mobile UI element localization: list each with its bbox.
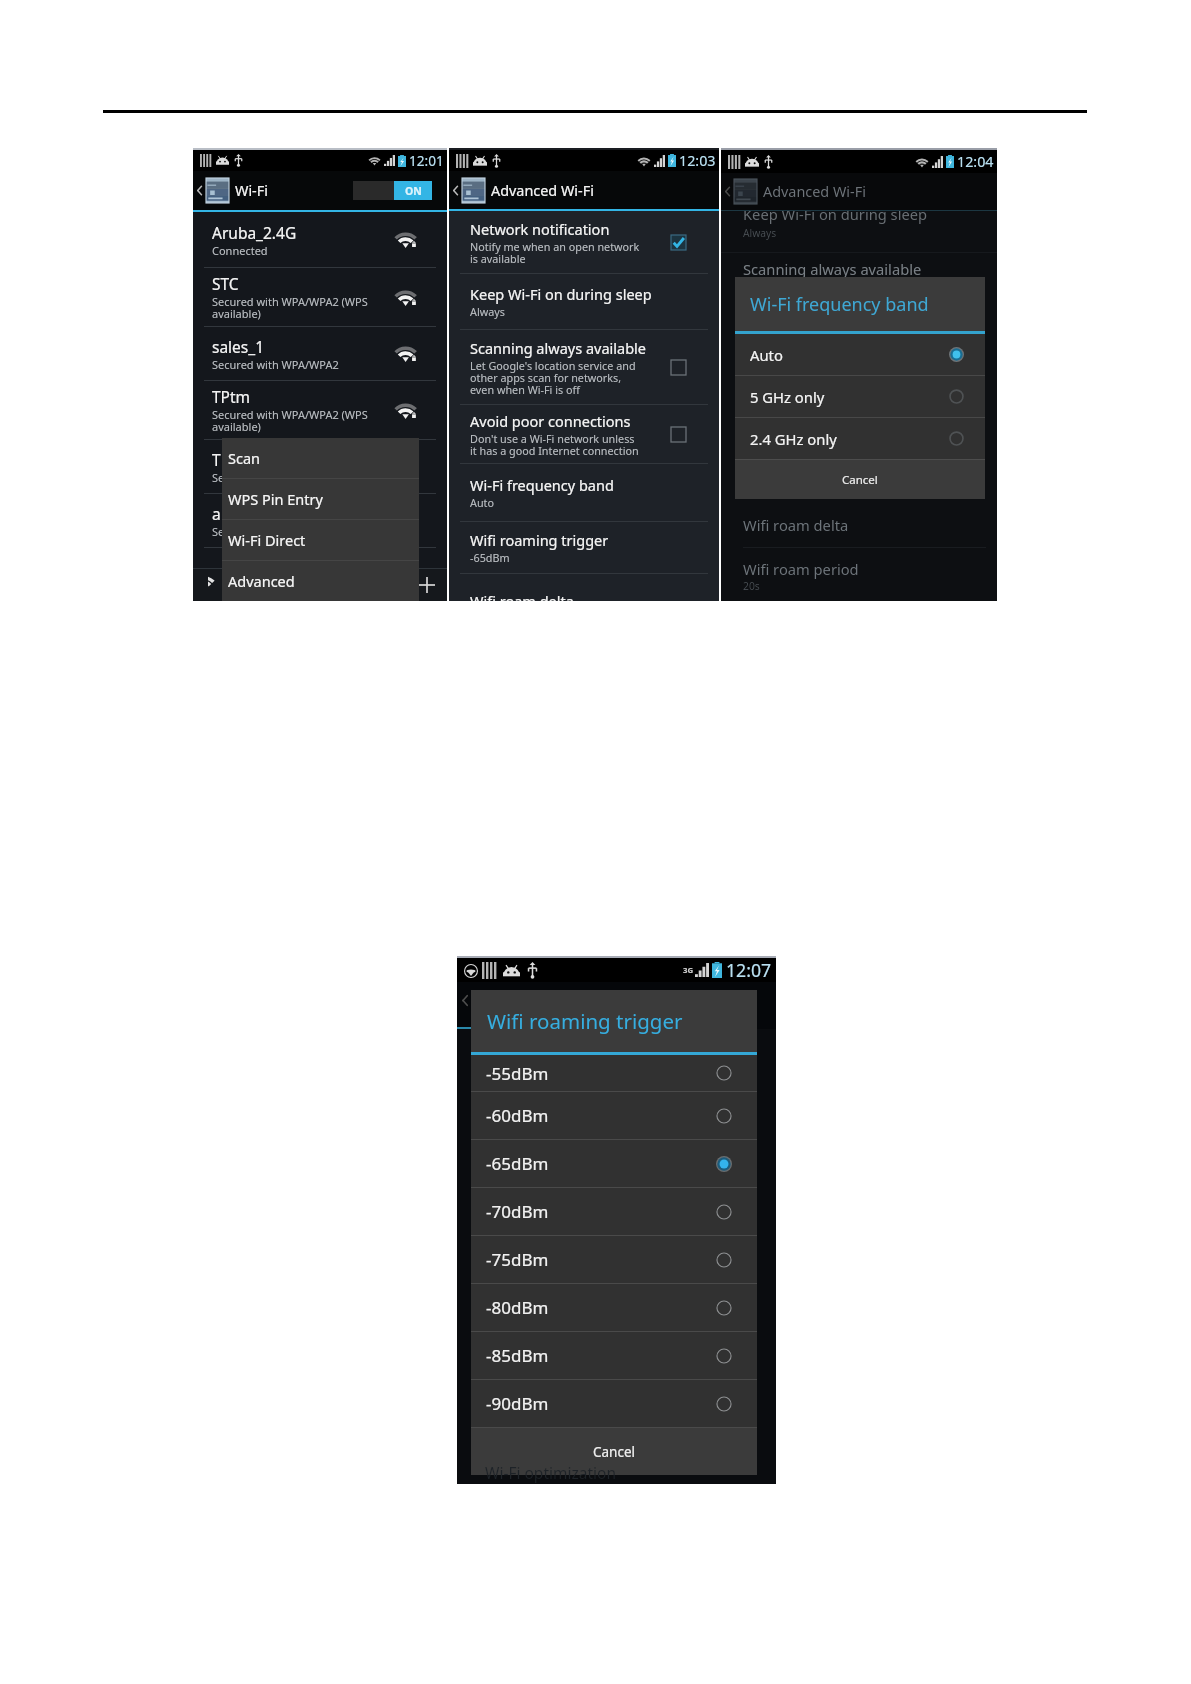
staticText: Don't use a Wi-Fi network unless it has … [470,431,639,458]
button[interactable]: -65dBm [471,1140,757,1187]
staticText: 12:03 [679,151,716,170]
staticText: Wifi roaming trigger [470,530,609,550]
staticText: Keep Wi-Fi on during sleep [470,284,652,304]
staticText: Cancel [593,1443,636,1461]
staticText: -80dBm [486,1296,549,1319]
button[interactable]: Keep Wi-Fi on during sleep [449,274,719,329]
button[interactable]: STC [193,268,447,326]
staticText: 12:07 [726,958,772,982]
staticText: Wi-Fi frequency band [750,292,929,317]
staticText: Avoid poor connections [470,411,631,431]
staticText: Auto [470,495,495,510]
button[interactable]: sales_1 [193,327,447,380]
staticText: sales_1 [212,336,265,357]
staticText: Network notification [470,219,610,239]
button[interactable]: -60dBm [471,1092,757,1139]
button[interactable]: Wi-Fi Direct [222,520,419,560]
staticText: -75dBm [486,1248,549,1271]
button[interactable]: Scan [222,438,419,478]
button[interactable]: -80dBm [471,1284,757,1331]
staticText: -65dBm [486,1152,549,1175]
button[interactable]: Avoid poor connections [449,405,719,463]
staticText: ON [405,184,422,198]
staticText: Secured with WPA/WPA2 (WPS available) [212,407,368,434]
staticText: 12:04 [957,152,994,171]
button[interactable]: WPS Pin Entry [222,479,419,519]
staticText: Cancel [842,472,878,488]
staticText: Let Google's location service and other … [470,358,636,397]
button[interactable]: -90dBm [471,1380,757,1427]
staticText: Always [743,226,777,240]
button[interactable]: Advanced [222,561,419,601]
staticText: Advanced [228,571,295,591]
staticText: WPS Pin Entry [228,489,323,509]
button[interactable]: ON [394,181,432,200]
staticText: Aruba_2.4G [212,222,297,243]
button[interactable]: Aruba_2.4G [193,212,447,267]
button[interactable]: -85dBm [471,1332,757,1379]
staticText: a [212,503,221,524]
button[interactable]: -75dBm [471,1236,757,1283]
staticText: Wi-Fi Direct [228,530,306,550]
staticText: Wi-Fi frequency band [470,475,614,495]
staticText: Secured with WPA/WPA2 [212,357,339,372]
staticText: Scanning always available [743,259,922,279]
staticText: Advanced Wi-Fi [491,181,594,201]
staticText: -60dBm [486,1104,549,1127]
staticText: 5 GHz only [750,387,825,407]
staticText: 12:01 [409,151,444,170]
button[interactable]: Wifi roaming trigger [449,522,719,573]
staticText: Keep Wi-Fi on during sleep [743,211,928,224]
staticText: Auto [750,345,783,365]
staticText: STC [212,273,239,294]
staticText: -65dBm [470,550,510,565]
button[interactable]: Network notification [449,211,719,273]
button[interactable]: Wi-Fi frequency band [449,464,719,521]
staticText: -55dBm [486,1062,549,1085]
staticText: Scanning always available [470,338,646,358]
button[interactable]: Add network [419,577,435,593]
staticText: Wifi roam delta [743,515,849,535]
button[interactable]: Cancel [471,1428,757,1475]
button[interactable]: TP [193,440,447,493]
button[interactable]: -55dBm [471,1055,757,1091]
button[interactable]: -70dBm [471,1188,757,1235]
staticText: -70dBm [486,1200,549,1223]
button[interactable]: 5 GHz only [735,376,985,417]
button[interactable]: Cancel [735,460,985,499]
staticText: 3G [683,965,694,976]
staticText: TPtm [212,386,251,407]
staticText: Secured with WPA/WPA2 (WPS available) [212,294,368,321]
staticText: 20s [743,579,760,593]
staticText: Notify me when an open network is availa… [470,239,640,266]
button[interactable]: a [193,494,447,547]
staticText: Secured with WPA/WPA2 [212,524,339,539]
staticText: TP [212,449,230,470]
staticText: Secured with WPA/WPA2 [212,470,339,485]
staticText: Scan [228,448,261,468]
button[interactable]: 2.4 GHz only [735,418,985,459]
button[interactable]: Scanning always available [449,330,719,404]
staticText: Wifi roam delta [470,591,574,601]
staticText: Connected [212,243,268,258]
staticText: Wifi roam period [743,559,859,579]
button[interactable]: Auto [735,334,985,375]
staticText: 2.4 GHz only [750,429,837,449]
staticText: Wifi roaming trigger [487,1007,683,1035]
staticText: Advanced Wi-Fi [763,182,866,202]
staticText: -90dBm [486,1392,549,1415]
staticText: -85dBm [486,1344,549,1367]
button[interactable]: TPtm [193,381,447,439]
staticText: Always [470,304,505,319]
staticText: Wi-Fi optimization [485,1462,617,1483]
staticText: Wi-Fi [235,181,268,201]
